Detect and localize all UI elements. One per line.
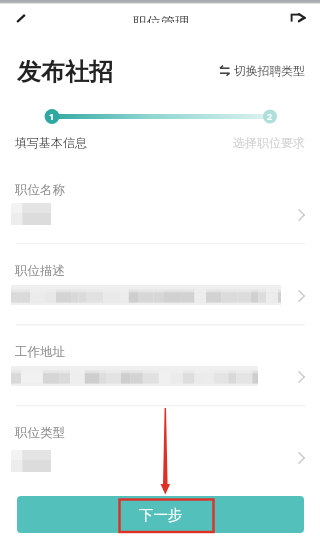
- staticText: 职位类型: [15, 425, 65, 441]
- staticText: 2: [267, 110, 273, 122]
- button[interactable]: 职位名称: [0, 181, 320, 262]
- staticText: 职位描述: [15, 263, 65, 279]
- staticText: 发布社招: [17, 57, 113, 87]
- button[interactable]: 职位描述: [0, 262, 320, 343]
- staticText: 工作地址: [15, 344, 65, 360]
- staticText: 切换招聘类型: [234, 64, 305, 79]
- staticText: 职位管理: [133, 14, 189, 23]
- button[interactable]: 切换招聘类型: [214, 60, 308, 81]
- staticText: 1: [49, 110, 55, 122]
- button[interactable]: 下一步: [17, 496, 304, 533]
- button[interactable]: 工作地址: [0, 343, 320, 424]
- staticText: 职位名称: [15, 182, 65, 198]
- button[interactable]: 职位类型: [0, 424, 320, 505]
- staticText: 下一步: [139, 506, 183, 524]
- staticText: 填写基本信息: [15, 135, 87, 150]
- staticText: 选择职位要求: [233, 135, 305, 150]
- button[interactable]: Back: [10, 3, 34, 23]
- button[interactable]: Share: [288, 3, 312, 23]
